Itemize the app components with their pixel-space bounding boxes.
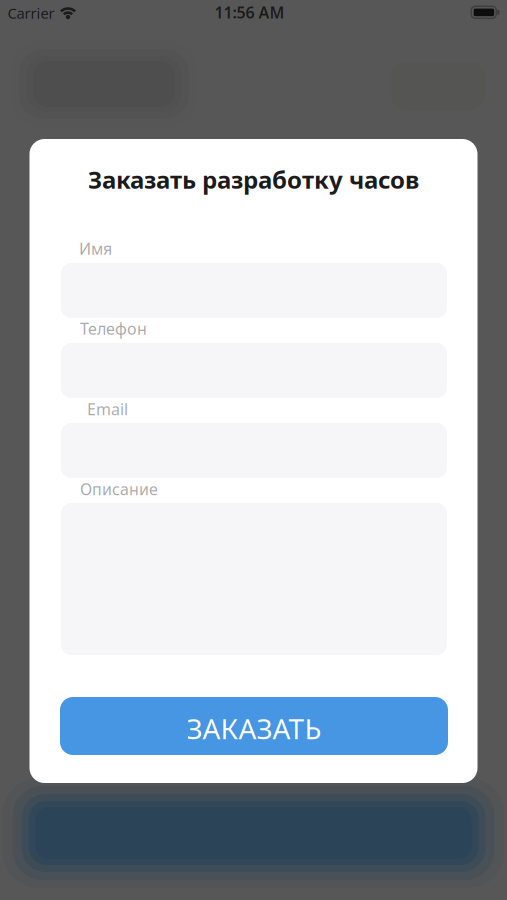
staticText: Имя bbox=[79, 238, 112, 259]
button[interactable]: ЗАКАЗАТЬ bbox=[60, 697, 448, 755]
staticText: Заказать разработку часов bbox=[88, 164, 419, 195]
staticText: 11:56 AM bbox=[214, 2, 284, 23]
staticText: Carrier bbox=[7, 3, 54, 23]
staticText: Описание bbox=[80, 478, 158, 500]
staticText: Телефон bbox=[80, 318, 147, 339]
staticText: ЗАКАЗАТЬ bbox=[186, 710, 321, 747]
staticText: Email bbox=[87, 398, 128, 420]
